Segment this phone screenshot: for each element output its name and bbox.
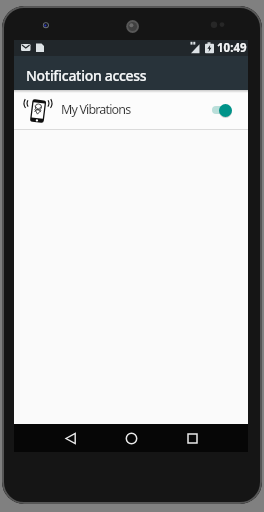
button[interactable]: My Vibrations bbox=[14, 90, 248, 129]
button[interactable] bbox=[172, 424, 212, 452]
staticText: Notification access bbox=[26, 66, 147, 85]
staticText: 10:49 bbox=[217, 40, 247, 56]
button[interactable] bbox=[219, 104, 232, 117]
button[interactable] bbox=[111, 424, 151, 452]
button[interactable] bbox=[50, 424, 90, 452]
staticText: My Vibrations bbox=[61, 101, 131, 118]
